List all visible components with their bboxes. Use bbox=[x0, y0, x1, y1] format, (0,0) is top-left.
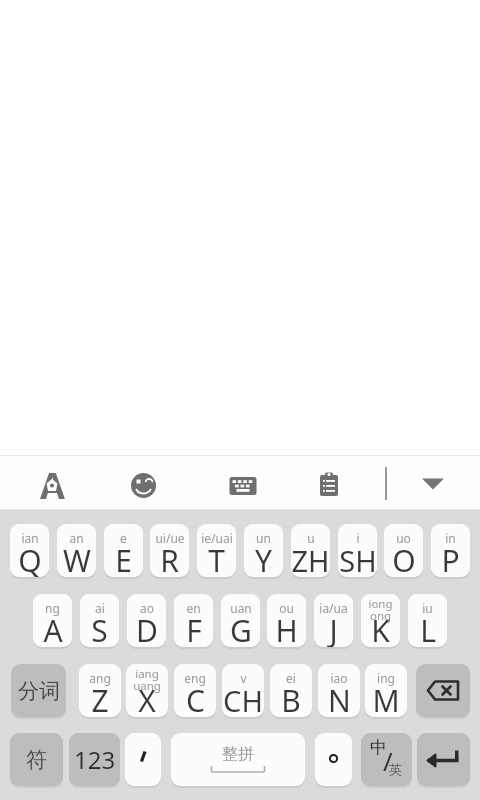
staticText: ai bbox=[95, 600, 105, 616]
staticText: ian bbox=[21, 530, 39, 546]
staticText: D bbox=[136, 610, 158, 647]
staticText: K bbox=[371, 610, 390, 647]
staticText: S bbox=[91, 610, 108, 647]
staticText: O bbox=[392, 540, 416, 577]
button[interactable]: A bbox=[30, 462, 74, 506]
staticText: J bbox=[329, 610, 338, 647]
button[interactable]: ie/uai bbox=[197, 524, 236, 577]
staticText: iong ong bbox=[368, 596, 393, 624]
button[interactable]: iu bbox=[408, 594, 447, 647]
staticText: i bbox=[356, 530, 360, 546]
button[interactable]: en bbox=[174, 594, 213, 647]
button[interactable]: ui/ue bbox=[150, 524, 189, 577]
button[interactable]: ai bbox=[80, 594, 119, 647]
staticText: F bbox=[186, 610, 202, 647]
staticText: Q bbox=[18, 540, 42, 577]
staticText: L bbox=[420, 610, 436, 647]
staticText: ao bbox=[140, 600, 154, 616]
button[interactable]: an bbox=[57, 524, 96, 577]
button[interactable]: un bbox=[244, 524, 283, 577]
staticText: 整拼 bbox=[222, 744, 254, 764]
staticText: iu bbox=[422, 600, 433, 616]
staticText: W bbox=[63, 540, 91, 577]
staticText: uan bbox=[230, 600, 252, 616]
button[interactable]: 123 bbox=[69, 733, 120, 786]
staticText: P bbox=[441, 540, 460, 577]
staticText: G bbox=[230, 610, 252, 647]
staticText: T bbox=[208, 540, 225, 577]
button[interactable]: eng bbox=[174, 664, 216, 717]
staticText: SH bbox=[339, 541, 377, 577]
staticText: an bbox=[69, 530, 84, 546]
staticText: R bbox=[160, 540, 179, 577]
staticText: / bbox=[383, 743, 393, 778]
button[interactable]: 中 bbox=[361, 733, 412, 786]
staticText: un bbox=[256, 530, 271, 546]
button[interactable]: v bbox=[222, 664, 264, 717]
button[interactable] bbox=[307, 463, 351, 507]
button[interactable]: i bbox=[338, 524, 377, 577]
button[interactable]: ao bbox=[127, 594, 166, 647]
button[interactable]: ei bbox=[270, 664, 312, 717]
button[interactable]: ng bbox=[33, 594, 72, 647]
staticText: iao bbox=[330, 670, 348, 686]
staticText: A bbox=[43, 610, 63, 647]
staticText: 分词 bbox=[18, 678, 60, 704]
staticText: in bbox=[445, 530, 456, 546]
button[interactable] bbox=[125, 733, 161, 786]
staticText: H bbox=[275, 610, 298, 647]
staticText: ei bbox=[286, 670, 296, 686]
button[interactable]: 分词 bbox=[11, 664, 66, 717]
button[interactable]: iang uang bbox=[126, 664, 168, 717]
staticText: N bbox=[328, 680, 351, 717]
staticText: eng bbox=[184, 670, 206, 686]
staticText: ang bbox=[89, 670, 111, 686]
staticText: v bbox=[240, 670, 247, 686]
button[interactable]: ou bbox=[267, 594, 306, 647]
button[interactable]: uan bbox=[221, 594, 260, 647]
button[interactable] bbox=[411, 462, 455, 506]
staticText: uo bbox=[396, 530, 411, 546]
button[interactable] bbox=[221, 464, 265, 508]
button[interactable] bbox=[416, 664, 470, 717]
staticText: X bbox=[138, 680, 156, 717]
staticText: 英 bbox=[389, 761, 402, 777]
button[interactable] bbox=[121, 463, 166, 508]
staticText: C bbox=[186, 680, 205, 717]
staticText: iang uang bbox=[133, 666, 161, 694]
staticText: ia/ua bbox=[319, 600, 348, 616]
staticText: 符 bbox=[26, 747, 47, 773]
staticText: CH bbox=[223, 681, 263, 717]
button[interactable] bbox=[417, 733, 470, 786]
button[interactable]: ian bbox=[10, 524, 49, 577]
button[interactable]: uo bbox=[384, 524, 423, 577]
staticText: M bbox=[372, 680, 400, 717]
button[interactable]: in bbox=[431, 524, 470, 577]
staticText: E bbox=[115, 540, 132, 577]
button[interactable] bbox=[315, 733, 352, 786]
button[interactable]: ing bbox=[365, 664, 407, 717]
staticText: Y bbox=[255, 540, 272, 577]
button[interactable]: iao bbox=[318, 664, 360, 717]
button[interactable]: 整拼 bbox=[171, 733, 305, 786]
button[interactable]: ang bbox=[79, 664, 121, 717]
button[interactable]: e bbox=[104, 524, 143, 577]
staticText: ZH bbox=[291, 541, 330, 577]
staticText: ing bbox=[377, 670, 395, 686]
button[interactable]: 符 bbox=[10, 733, 63, 786]
staticText: ou bbox=[279, 600, 294, 616]
staticText: Z bbox=[91, 680, 109, 717]
button[interactable]: iong ong bbox=[361, 594, 400, 647]
staticText: 123 bbox=[74, 743, 116, 776]
staticText: 中 bbox=[370, 737, 387, 758]
staticText: e bbox=[120, 530, 127, 546]
staticText: u bbox=[307, 530, 315, 546]
button[interactable]: ia/ua bbox=[314, 594, 353, 647]
staticText: ng bbox=[45, 600, 60, 616]
staticText: ui/ue bbox=[155, 530, 185, 546]
staticText: A bbox=[40, 461, 65, 505]
staticText: B bbox=[281, 680, 301, 717]
staticText: ie/uai bbox=[201, 530, 233, 546]
staticText: en bbox=[186, 600, 201, 616]
button[interactable]: u bbox=[291, 524, 330, 577]
